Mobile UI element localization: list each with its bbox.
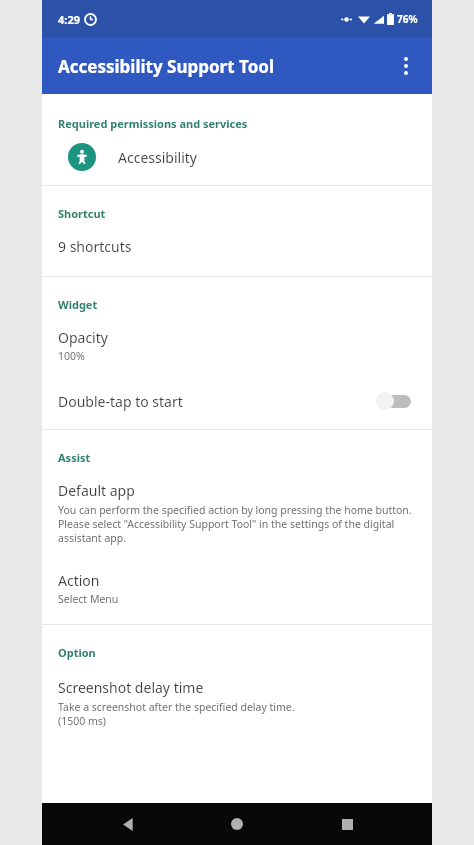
button[interactable]: Back [104, 803, 152, 845]
staticText: Accessibility Support Tool [58, 55, 274, 78]
button[interactable]: More options [386, 46, 426, 86]
staticText: 4:29 [58, 12, 80, 27]
staticText: Take a screenshot after the specified de… [58, 700, 295, 728]
button[interactable]: Action [42, 557, 432, 624]
staticText: Action [58, 571, 100, 590]
staticText: Widget [58, 297, 98, 312]
staticText: 76% [397, 12, 418, 26]
staticText: Screenshot delay time [58, 678, 204, 697]
button[interactable]: Home [213, 803, 261, 845]
button[interactable]: 9 shortcuts [42, 221, 432, 276]
button[interactable]: Screenshot delay time [42, 660, 432, 738]
staticText: Shortcut [58, 206, 106, 221]
staticText: Assist [58, 450, 91, 465]
staticText: 100% [58, 349, 85, 363]
button[interactable]: Default app [42, 465, 432, 557]
staticText: Option [58, 645, 96, 660]
staticText: Double-tap to start [58, 392, 376, 411]
button[interactable]: Opacity [42, 312, 432, 377]
button[interactable]: Accessibility [42, 131, 432, 185]
button[interactable]: Double-tap to start [42, 377, 432, 429]
staticText: You can perform the specified action by … [58, 503, 412, 545]
button[interactable]: Recent apps [323, 803, 371, 845]
staticText: Accessibility [118, 148, 197, 167]
staticText: Default app [58, 481, 135, 500]
staticText: Select Menu [58, 592, 119, 606]
staticText: Opacity [58, 328, 108, 347]
staticText: Required permissions and services [58, 116, 248, 131]
staticText: 9 shortcuts [58, 237, 132, 256]
button[interactable]: Double-tap to start toggle [376, 391, 412, 411]
